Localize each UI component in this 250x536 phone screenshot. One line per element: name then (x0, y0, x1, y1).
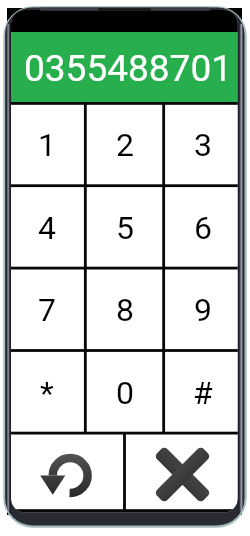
button[interactable]: 0 (86, 350, 164, 433)
button[interactable]: 9 (164, 268, 242, 350)
staticText: 1 (38, 126, 56, 164)
staticText: # (193, 374, 213, 412)
button[interactable]: 7 (7, 268, 86, 350)
staticText: 5 (116, 209, 134, 247)
button[interactable]: 1 (7, 102, 86, 186)
staticText: 2 (116, 126, 134, 164)
staticText: 0 (116, 374, 134, 412)
staticText: 4 (38, 209, 56, 247)
button[interactable]: 2 (86, 102, 164, 186)
button[interactable]: 8 (86, 268, 164, 350)
staticText: 8 (116, 291, 134, 329)
staticText: * (40, 374, 54, 412)
button[interactable]: 6 (164, 186, 242, 268)
staticText: 6 (194, 209, 212, 247)
staticText: 9 (194, 291, 212, 329)
button[interactable]: 5 (86, 186, 164, 268)
button[interactable]: 3 (164, 102, 242, 186)
button[interactable]: Clear number (124, 433, 242, 512)
staticText: 0355488701 (24, 47, 232, 90)
staticText: 3 (194, 126, 212, 164)
button[interactable]: 4 (7, 186, 86, 268)
button[interactable]: Undo last digit (7, 433, 124, 512)
staticText: 7 (38, 291, 56, 329)
button[interactable]: * (7, 350, 86, 433)
button[interactable]: # (164, 350, 242, 433)
